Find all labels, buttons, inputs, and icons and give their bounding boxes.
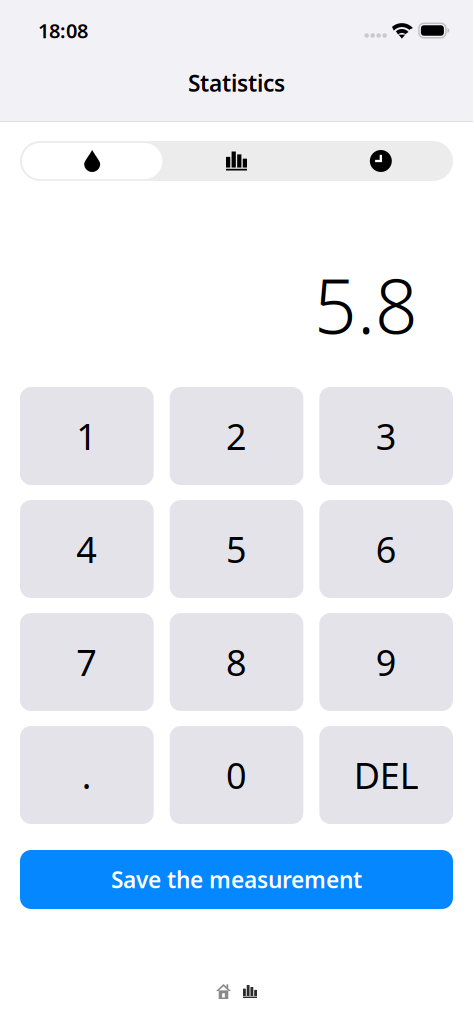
staticText: 18:08	[38, 17, 88, 44]
button[interactable]: 2	[170, 387, 303, 485]
staticText: 0	[226, 751, 247, 799]
button[interactable]: 9	[319, 613, 453, 711]
button[interactable]: 1	[20, 387, 154, 485]
staticText: 9	[376, 638, 397, 686]
button[interactable]: 6	[319, 500, 453, 598]
button[interactable]: Charts	[164, 141, 309, 181]
staticText: 2	[226, 412, 247, 460]
staticText: 5	[226, 525, 247, 573]
button[interactable]: 0	[170, 726, 303, 824]
staticText: DEL	[354, 751, 419, 799]
staticText: 6	[376, 525, 397, 573]
staticText: Save the measurement	[111, 864, 362, 894]
staticText: 4	[76, 525, 97, 573]
staticText: .	[82, 751, 92, 799]
button[interactable]: Save the measurement	[20, 850, 453, 909]
button[interactable]: Home	[216, 984, 231, 999]
button[interactable]: 4	[20, 500, 154, 598]
button[interactable]: 5	[170, 500, 303, 598]
button[interactable]: 7	[20, 613, 154, 711]
button[interactable]: DEL	[319, 726, 453, 824]
staticText: 5.8	[314, 255, 418, 354]
staticText: 8	[226, 638, 247, 686]
staticText: 7	[76, 638, 97, 686]
staticText: 1	[76, 412, 97, 460]
button[interactable]: Water intake	[20, 141, 164, 181]
button[interactable]: 8	[170, 613, 303, 711]
button[interactable]: Statistics	[243, 985, 257, 998]
button[interactable]: 3	[319, 387, 453, 485]
button[interactable]: .	[20, 726, 154, 824]
staticText: 3	[376, 412, 397, 460]
staticText: Statistics	[188, 68, 285, 98]
button[interactable]: History	[309, 141, 453, 181]
